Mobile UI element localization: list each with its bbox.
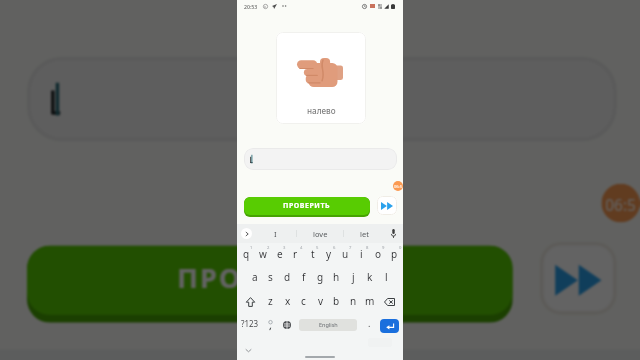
button[interactable]: f: [295, 266, 312, 290]
staticText: i: [360, 247, 363, 261]
button[interactable]: g: [312, 266, 329, 290]
button[interactable]: b: [328, 290, 345, 314]
button[interactable]: d: [279, 266, 296, 290]
staticText: 9: [382, 245, 385, 251]
staticText: let: [360, 229, 369, 239]
staticText: k: [367, 270, 373, 284]
staticText: b: [333, 294, 340, 308]
button[interactable]: ПРОВЕРИТЬ: [27, 245, 513, 323]
staticText: y: [326, 247, 332, 261]
button[interactable]: [27, 57, 617, 141]
staticText: 8: [366, 245, 369, 251]
button[interactable]: z: [262, 290, 279, 314]
button[interactable]: ?123: [239, 313, 261, 337]
staticText: h: [333, 270, 340, 284]
staticText: 6: [333, 245, 336, 251]
button[interactable]: .: [363, 313, 376, 337]
button[interactable]: More suggestions: [241, 228, 252, 239]
staticText: e: [277, 247, 283, 261]
staticText: 06:5: [394, 184, 402, 189]
button[interactable]: love: [302, 224, 338, 243]
button[interactable]: n: [345, 290, 362, 314]
staticText: .: [368, 317, 371, 329]
staticText: d: [284, 270, 291, 284]
staticText: q: [243, 247, 250, 261]
staticText: n: [350, 294, 357, 308]
staticText: a: [252, 270, 258, 284]
button[interactable]: o: [370, 243, 387, 267]
button[interactable]: Voice input: [389, 224, 398, 243]
button[interactable]: Hide keyboard: [246, 349, 251, 352]
staticText: 3: [283, 245, 286, 251]
button[interactable]: Backspace: [381, 290, 398, 314]
button[interactable]: s: [262, 266, 279, 290]
staticText: ПРОВЕРИТЬ: [283, 201, 331, 211]
button[interactable]: I: [257, 224, 293, 243]
button[interactable]: v: [312, 290, 329, 314]
staticText: 4: [300, 245, 303, 251]
button[interactable]: налево: [276, 32, 366, 124]
button[interactable]: Skip: [377, 196, 397, 215]
button[interactable]: w: [254, 243, 271, 267]
staticText: l: [385, 270, 388, 284]
staticText: z: [268, 294, 273, 308]
staticText: 1: [250, 245, 253, 251]
button[interactable]: j: [345, 266, 362, 290]
button[interactable]: Space: [299, 319, 357, 331]
staticText: w: [259, 247, 267, 261]
button[interactable]: k: [361, 266, 378, 290]
staticText: c: [301, 294, 306, 308]
staticText: I: [274, 229, 277, 239]
staticText: v: [318, 294, 324, 308]
button[interactable]: Skip: [540, 242, 617, 315]
staticText: English: [319, 321, 338, 328]
staticText: ПРОВЕРИТЬ: [177, 261, 362, 300]
staticText: p: [391, 247, 398, 261]
staticText: m: [365, 294, 375, 308]
button[interactable]: ПРОВЕРИТЬ: [244, 197, 370, 217]
button[interactable]: Enter: [380, 319, 399, 333]
button[interactable]: love: [251, 350, 389, 360]
staticText: 2: [267, 245, 270, 251]
button[interactable]: h: [328, 266, 345, 290]
button[interactable]: Change language: [279, 313, 295, 337]
staticText: s: [268, 270, 273, 284]
button[interactable]: Shift: [242, 290, 259, 314]
staticText: t: [311, 247, 315, 261]
staticText: o: [375, 247, 382, 261]
button[interactable]: e: [271, 243, 288, 267]
staticText: 0: [399, 245, 402, 251]
button[interactable]: m: [361, 290, 378, 314]
staticText: 06:5: [605, 195, 636, 215]
staticText: 20:53: [244, 3, 258, 10]
staticText: g: [317, 270, 324, 284]
button[interactable]: c: [295, 290, 312, 314]
button[interactable]: u: [337, 243, 354, 267]
staticText: u: [342, 247, 349, 261]
staticText: налево: [307, 105, 336, 116]
button[interactable]: l: [378, 266, 395, 290]
button[interactable]: t: [304, 243, 321, 267]
staticText: 5: [316, 245, 319, 251]
staticText: f: [302, 270, 306, 284]
staticText: j: [352, 270, 355, 284]
button[interactable]: let: [346, 224, 382, 243]
button[interactable]: i: [353, 243, 370, 267]
button[interactable]: p: [386, 243, 403, 267]
staticText: ?123: [241, 318, 259, 329]
button[interactable]: q: [238, 243, 255, 267]
staticText: r: [293, 247, 298, 261]
button[interactable]: a: [246, 266, 263, 290]
button[interactable]: r: [287, 243, 304, 267]
button[interactable]: x: [279, 290, 296, 314]
staticText: love: [313, 229, 328, 239]
staticText: x: [285, 294, 291, 308]
staticText: 7: [349, 245, 352, 251]
button[interactable]: [244, 148, 397, 170]
button[interactable]: Comma: [262, 313, 278, 337]
button[interactable]: y: [320, 243, 337, 267]
